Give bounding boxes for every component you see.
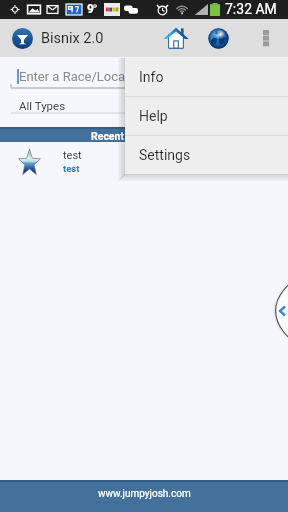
staticText: 9 bbox=[87, 2, 94, 16]
staticText: Recent bbox=[91, 130, 124, 142]
staticText: Enter a Race/Location bbox=[19, 69, 148, 84]
staticText: test bbox=[63, 163, 80, 174]
button[interactable]: Settings bbox=[125, 136, 288, 174]
button[interactable]: Help bbox=[125, 97, 288, 135]
staticText: Help bbox=[139, 108, 168, 124]
button[interactable]: Home bbox=[155, 19, 197, 57]
button[interactable]: Enter a Race/Location bbox=[0, 64, 288, 89]
staticText: www.jumpyjosh.com bbox=[98, 488, 191, 500]
staticText: Info bbox=[139, 69, 164, 85]
button[interactable]: Info bbox=[125, 58, 288, 96]
button[interactable]: test bbox=[0, 145, 288, 184]
button[interactable]: Web bbox=[197, 19, 239, 57]
staticText: Bisnix 2.0 bbox=[41, 30, 104, 47]
button[interactable]: All Types bbox=[0, 96, 288, 115]
button[interactable]: More options bbox=[246, 19, 285, 57]
staticText: Settings bbox=[139, 147, 191, 163]
staticText: test bbox=[63, 149, 82, 162]
button[interactable]: Open side panel bbox=[275, 280, 288, 342]
staticText: All Types bbox=[19, 99, 66, 112]
staticText: 7:32 AM bbox=[225, 1, 277, 17]
